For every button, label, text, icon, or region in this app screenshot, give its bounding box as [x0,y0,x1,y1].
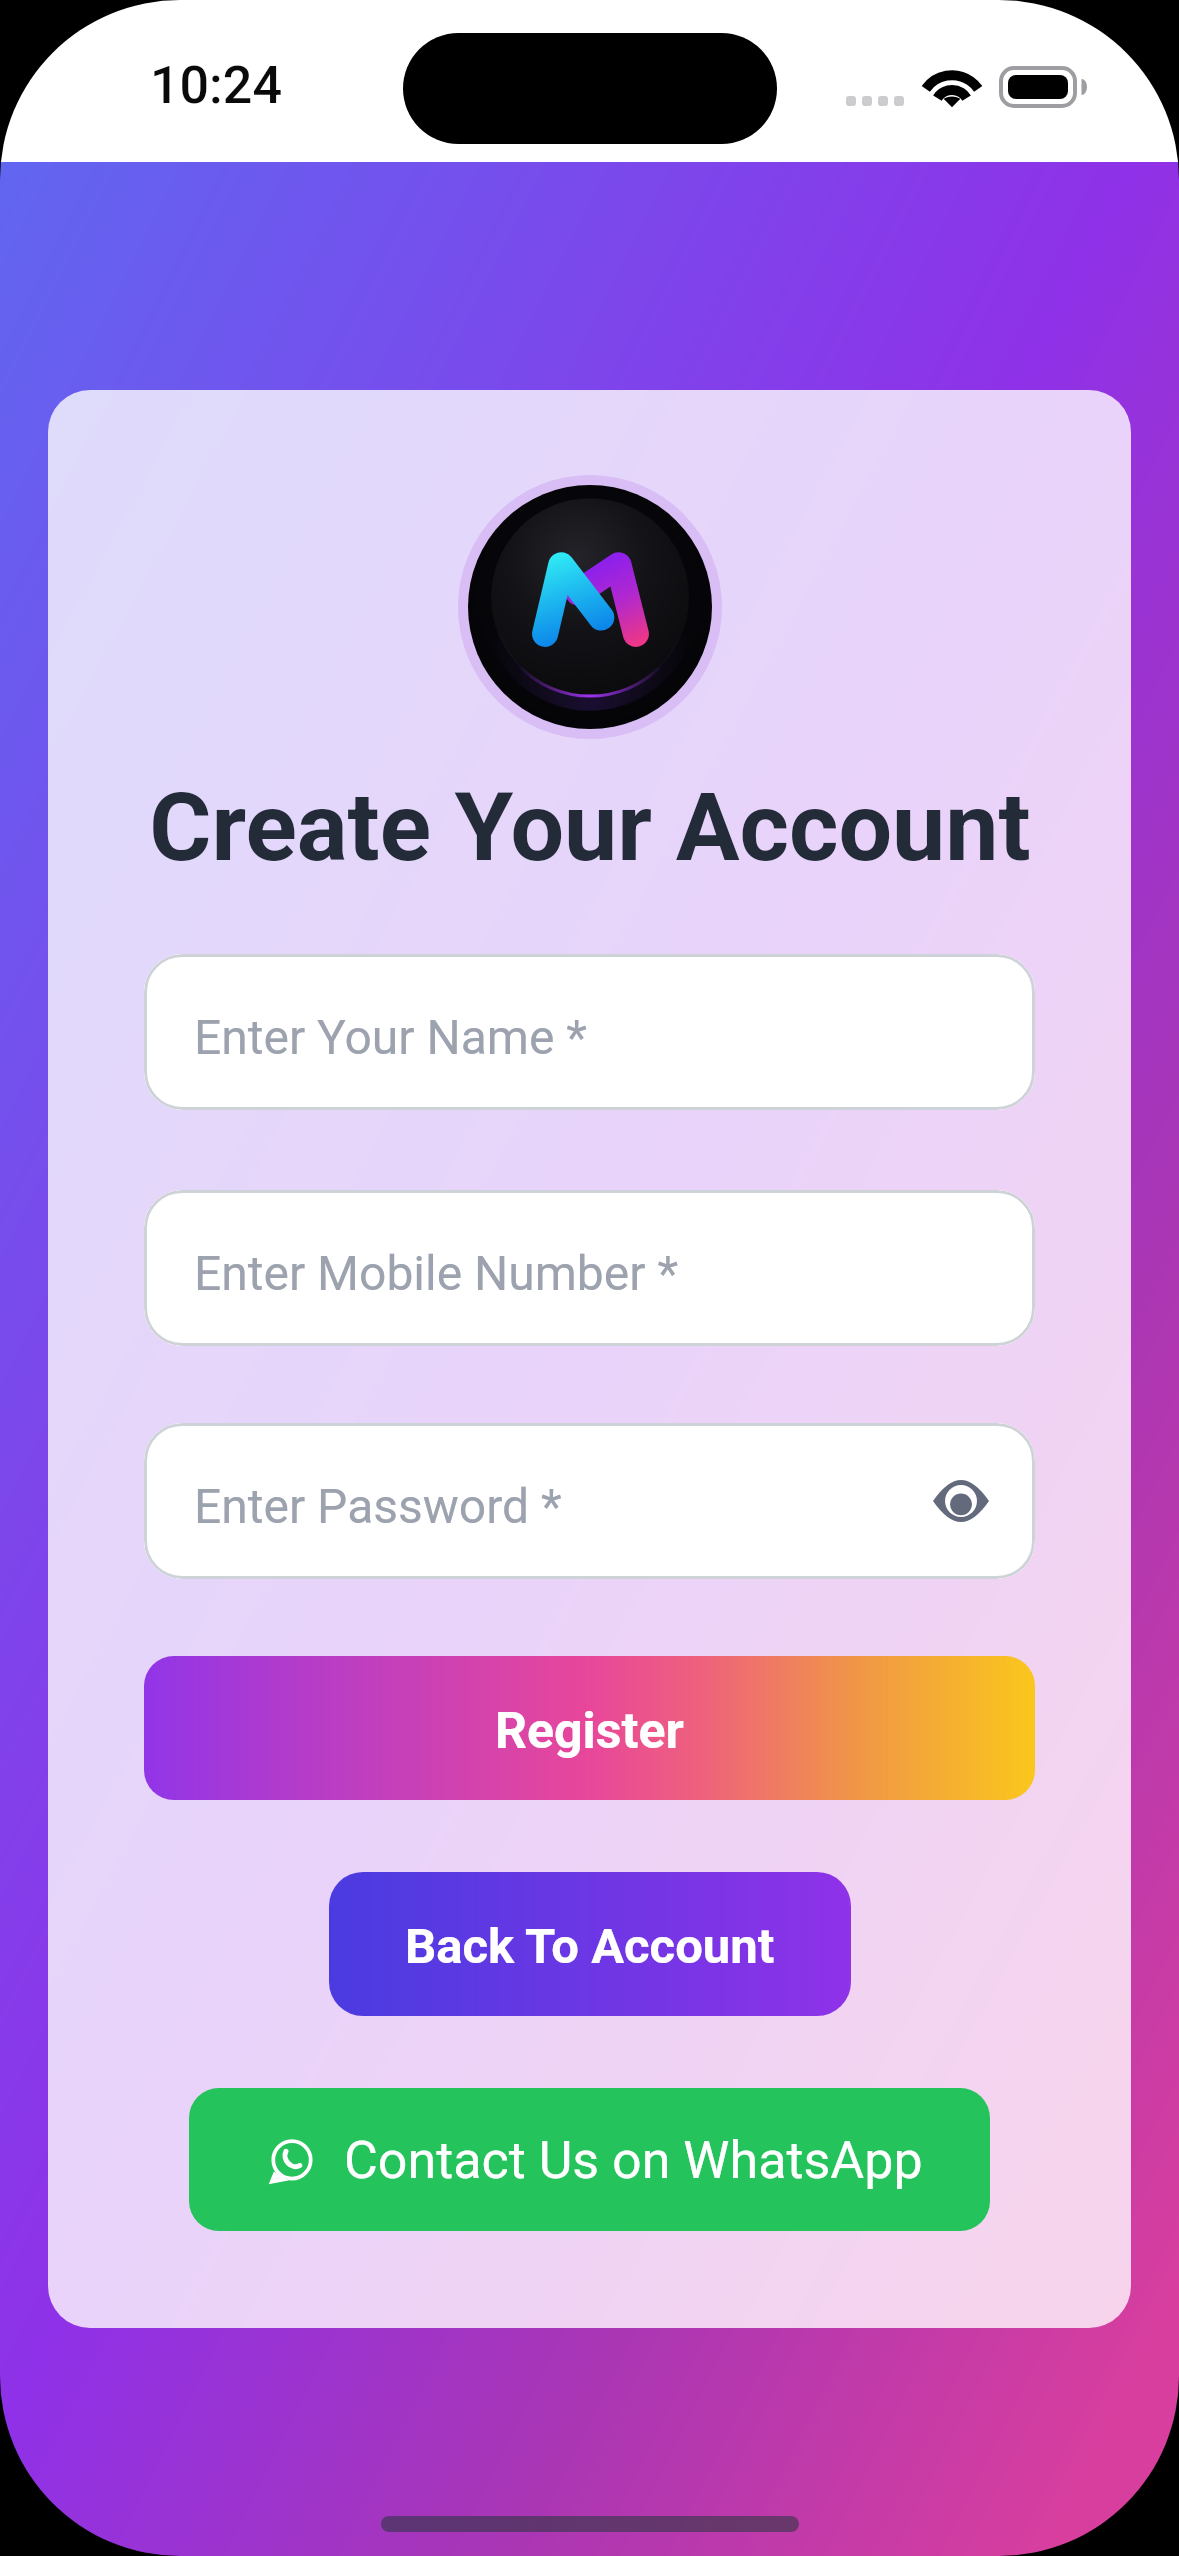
button[interactable]: Back To Account [329,1872,851,2016]
staticText: Contact Us on WhatsApp [344,2130,923,2191]
button[interactable]: Enter Mobile Number * [144,1190,1035,1346]
staticText: Create Your Account [149,772,1031,883]
staticText: Register [495,1702,684,1761]
staticText: Enter Password * [194,1478,562,1534]
button[interactable]: Enter Your Name * [144,954,1035,1110]
staticText: Enter Mobile Number * [194,1245,679,1301]
staticText: Enter Your Name * [194,1009,587,1065]
button[interactable]: Show password [923,1463,999,1539]
button[interactable]: Contact Us on WhatsApp [189,2088,990,2231]
staticText: 10:24 [150,55,282,116]
button[interactable]: Register [144,1656,1035,1800]
button[interactable]: Enter Password * [144,1423,1035,1579]
staticText: Back To Account [405,1918,775,1975]
